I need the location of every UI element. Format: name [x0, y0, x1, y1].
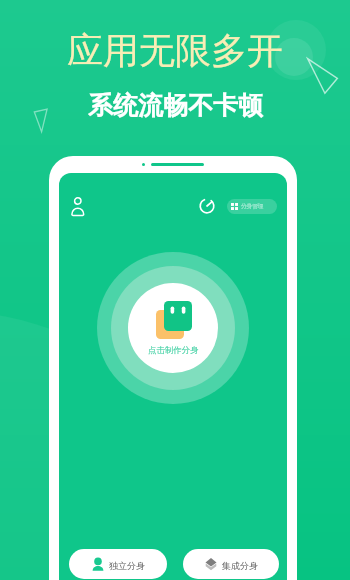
button[interactable]: Profile: [67, 195, 89, 217]
staticText: 点击制作分身: [148, 345, 199, 356]
staticText: 集成分身: [222, 560, 258, 571]
button[interactable]: 独立分身: [69, 549, 167, 579]
button[interactable]: Refresh: [198, 197, 216, 215]
button[interactable]: 集成分身: [183, 549, 279, 579]
staticText: 应用无限多开: [67, 28, 283, 73]
staticText: 分身管理: [241, 203, 264, 210]
button[interactable]: 分身管理: [227, 199, 277, 214]
staticText: 独立分身: [109, 560, 145, 571]
staticText: 系统流畅不卡顿: [88, 90, 263, 121]
button[interactable]: 点击制作分身: [128, 283, 218, 373]
